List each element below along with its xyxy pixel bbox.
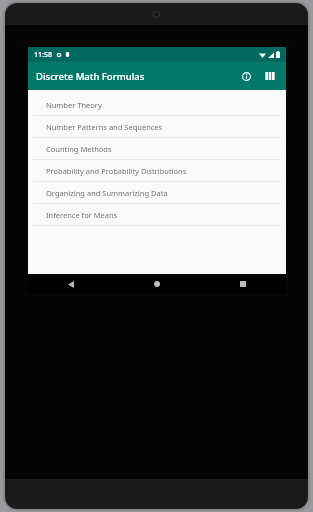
button[interactable]: Organizing and Summarizing Data (28, 182, 286, 203)
staticText: Organizing and Summarizing Data (46, 188, 168, 198)
staticText: Discrete Math Formulas (36, 70, 145, 83)
staticText: Probability and Probability Distribution… (46, 166, 187, 176)
button[interactable]: Home (114, 274, 200, 294)
staticText: Number Patterns and Sequences (46, 122, 163, 132)
button[interactable]: Number Patterns and Sequences (28, 116, 286, 137)
staticText: Number Theory (46, 100, 102, 110)
staticText: Counting Methods (46, 144, 112, 154)
staticText: Inference for Means (46, 210, 118, 220)
button[interactable]: Number Theory (28, 94, 286, 115)
button[interactable]: View options (260, 66, 280, 86)
button[interactable]: Probability and Probability Distribution… (28, 160, 286, 181)
button[interactable]: Recent apps (200, 274, 286, 294)
button[interactable]: Back (28, 274, 114, 294)
button[interactable]: Info (236, 66, 256, 86)
button[interactable]: Inference for Means (28, 204, 286, 225)
staticText: 11:58 (34, 50, 52, 60)
button[interactable]: Counting Methods (28, 138, 286, 159)
